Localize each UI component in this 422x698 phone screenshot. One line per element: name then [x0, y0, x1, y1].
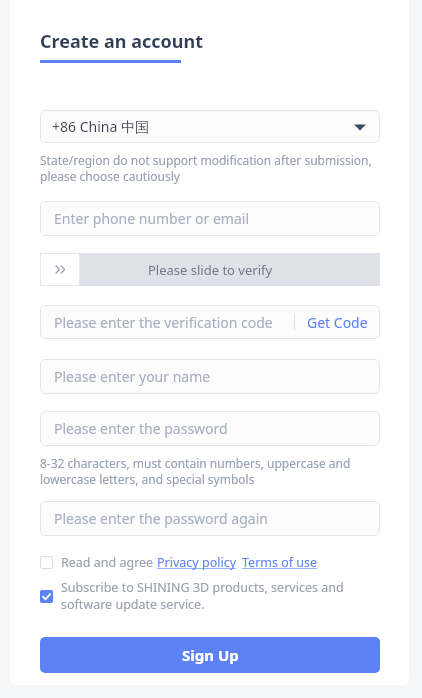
other: Select country [354, 123, 366, 131]
staticText: 8-32 characters, must contain numbers, u… [40, 455, 380, 488]
staticText: Get Code [307, 313, 368, 332]
staticText: Enter phone number or email [54, 209, 250, 228]
button[interactable]: Please enter your name [40, 359, 380, 394]
button[interactable]: Read and agree [40, 556, 53, 569]
button[interactable]: Privacy policy [157, 554, 237, 571]
button[interactable]: Subscribe to updates [40, 590, 53, 603]
staticText: Create an account [40, 29, 203, 54]
staticText: Please slide to verify [148, 261, 273, 279]
button[interactable]: Please enter the verification code [40, 305, 294, 339]
staticText: Please enter the password [54, 419, 228, 438]
staticText: Subscribe to SHINING 3D products, servic… [61, 579, 380, 613]
other: Slide to verify handle [40, 253, 80, 286]
button[interactable]: Get Code [295, 305, 380, 339]
staticText: Read and agree [61, 554, 157, 571]
button[interactable]: +86 China 中国 [40, 110, 380, 143]
button[interactable]: Enter phone number or email [40, 201, 380, 236]
button[interactable]: Please enter the password [40, 411, 380, 446]
staticText: Please enter the verification code [54, 313, 273, 332]
staticText: State/region do not support modification… [40, 152, 380, 185]
button[interactable]: Create an account [40, 29, 203, 63]
button[interactable]: Please slide to verify [40, 253, 380, 286]
button[interactable]: Please enter the password again [40, 501, 380, 536]
staticText: Sign Up [182, 645, 239, 665]
staticText: Terms of use [242, 554, 318, 571]
staticText: Privacy policy [157, 554, 237, 571]
staticText: +86 China 中国 [52, 117, 149, 136]
staticText: Please enter your name [54, 367, 211, 386]
staticText: Please enter the password again [54, 509, 268, 528]
button[interactable]: Sign Up [40, 637, 380, 673]
button[interactable]: Terms of use [242, 554, 318, 571]
